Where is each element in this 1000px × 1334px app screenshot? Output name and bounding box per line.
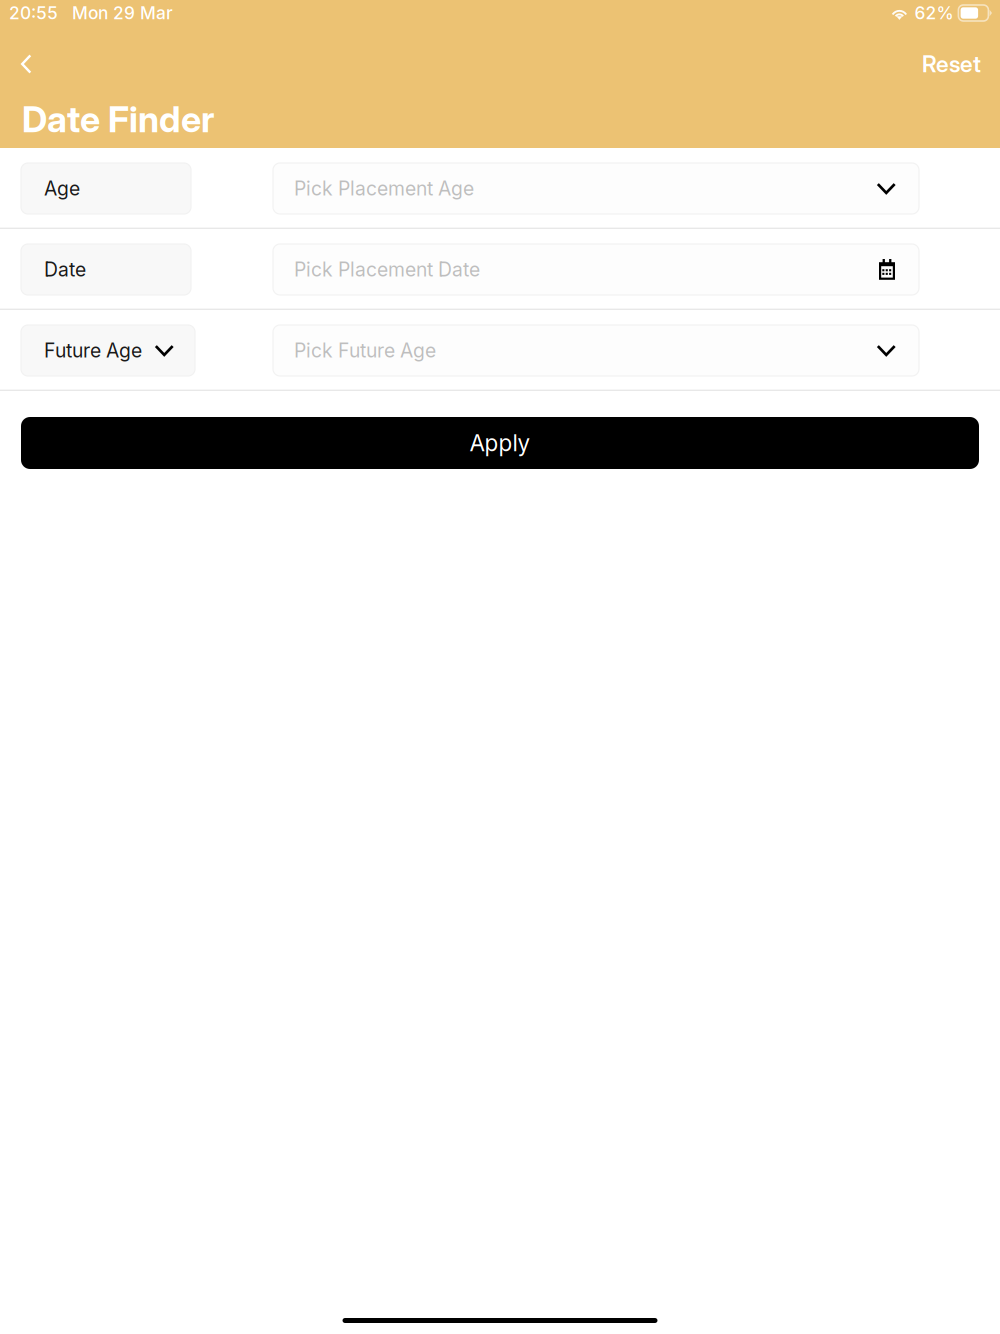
button[interactable]: Reset	[922, 39, 1000, 89]
button[interactable]: Date	[0, 244, 191, 295]
button[interactable]: Apply	[0, 417, 1000, 469]
button[interactable]: Pick Future Age	[273, 325, 1000, 376]
staticText: 62%	[914, 2, 953, 23]
staticText: Mon 29 Mar	[72, 2, 173, 23]
staticText: Future Age	[44, 339, 142, 362]
staticText: Date	[44, 258, 86, 281]
button[interactable]: Future Age	[0, 325, 195, 376]
button[interactable]: Back	[0, 39, 65, 89]
staticText: Apply	[469, 429, 530, 457]
staticText: Reset	[922, 50, 981, 78]
staticText: Age	[44, 177, 80, 200]
staticText: Date Finder	[22, 97, 214, 141]
staticText: Pick Placement Date	[294, 258, 480, 281]
button[interactable]: Pick Placement Age	[273, 163, 1000, 214]
staticText: 20:55	[9, 2, 58, 23]
button[interactable]: Age	[0, 163, 191, 214]
staticText: Pick Future Age	[294, 339, 436, 362]
button[interactable]: Pick Placement Date	[273, 244, 1000, 295]
staticText: Pick Placement Age	[294, 177, 474, 200]
